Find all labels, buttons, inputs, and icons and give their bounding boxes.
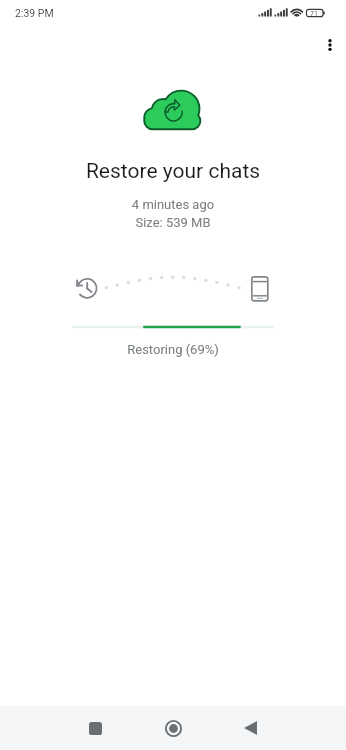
button[interactable]: Back: [228, 708, 273, 748]
button[interactable]: Recent apps: [73, 708, 118, 748]
staticText: Restore your chats: [0, 159, 346, 184]
button[interactable]: Home: [151, 708, 196, 748]
staticText: 2:39 PM: [15, 7, 54, 19]
staticText: 4 minutes ago: [0, 197, 346, 212]
staticText: Size: 539 MB: [0, 215, 346, 230]
staticText: Restoring (69%): [0, 342, 346, 357]
staticText: 71: [310, 10, 318, 18]
button[interactable]: More options: [310, 25, 346, 65]
